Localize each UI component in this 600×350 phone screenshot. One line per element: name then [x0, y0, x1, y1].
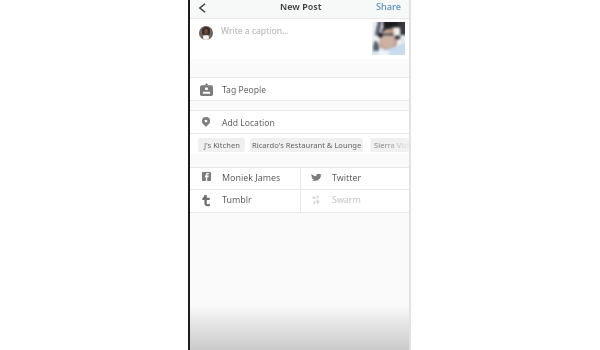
staticText: Share [376, 0, 402, 13]
button[interactable]: Moniek James [190, 168, 300, 189]
staticText: New Post [280, 0, 322, 12]
button[interactable]: Share [372, 0, 404, 18]
staticText: Tag People [222, 84, 267, 96]
button[interactable]: Tag People [190, 78, 410, 100]
staticText: Moniek James [222, 171, 281, 183]
button[interactable]: Twitter [301, 168, 410, 189]
button[interactable]: Add Location [190, 111, 410, 133]
staticText: Twitter [332, 171, 362, 183]
staticText: Tumblr [222, 193, 252, 205]
staticText: Swarm [332, 193, 361, 205]
staticText: Add Location [222, 117, 275, 129]
button[interactable]: Sierra Vista [370, 138, 410, 152]
staticText: Write a caption... [221, 25, 289, 37]
button[interactable]: Write a caption... [190, 19, 410, 59]
staticText: Sierra Vista [374, 140, 410, 150]
staticText: Ricardo's Restaurant & Lounge [252, 140, 362, 150]
button[interactable]: Swarm [301, 190, 410, 212]
button[interactable]: Back [194, 0, 212, 18]
button[interactable]: J's Kitchen [198, 138, 245, 152]
staticText: J's Kitchen [204, 140, 240, 150]
button[interactable]: Tumblr [190, 190, 300, 212]
button[interactable]: Ricardo's Restaurant & Lounge [250, 138, 363, 152]
